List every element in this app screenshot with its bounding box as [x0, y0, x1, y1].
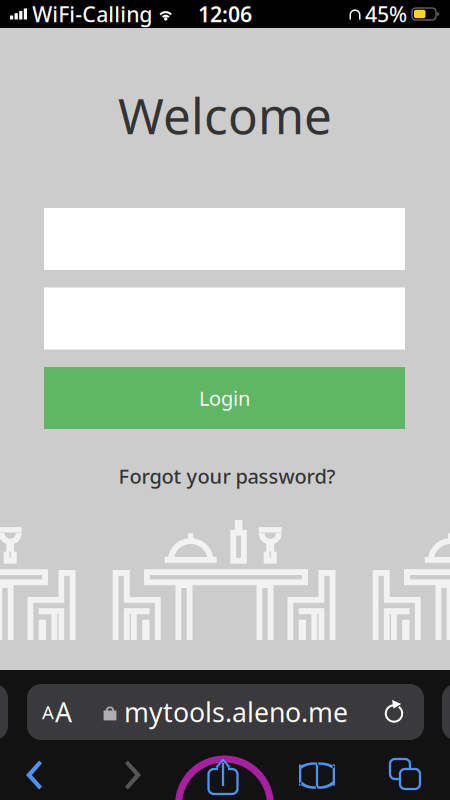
staticText: Forgot your password? [118, 463, 335, 489]
staticText: 45% [365, 0, 407, 28]
button[interactable]: Share [184, 751, 262, 800]
button[interactable]: Tabs [366, 749, 444, 799]
button[interactable]: Bookmarks [278, 750, 356, 800]
staticText: A [42, 700, 54, 724]
button[interactable]: Back [0, 750, 73, 800]
staticText: mytools.aleno.me [124, 694, 348, 730]
button[interactable]: Forgot your password? [110, 455, 343, 497]
staticText: WiFi-Calling [32, 0, 152, 28]
button[interactable]: Login [44, 367, 405, 429]
staticText: Login [199, 385, 250, 411]
staticText: Welcome [118, 82, 332, 148]
button[interactable]: Text size [30, 684, 84, 740]
button[interactable]: Reload [368, 684, 420, 740]
staticText: A [55, 694, 72, 730]
button[interactable]: mytools.aleno.me [27, 684, 424, 740]
staticText: 12:06 [198, 0, 252, 28]
button[interactable]: Forward [94, 750, 172, 800]
